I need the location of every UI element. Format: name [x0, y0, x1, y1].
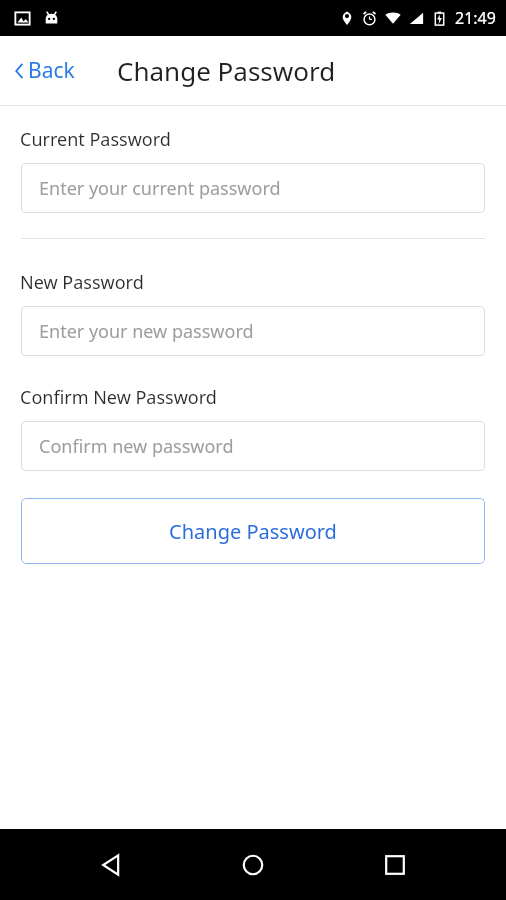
staticText: Enter your current password [39, 176, 281, 201]
staticText: Confirm New Password [20, 385, 217, 410]
button[interactable]: Recent apps [365, 835, 425, 895]
staticText: Change Password [117, 53, 336, 88]
staticText: Change Password [169, 518, 337, 545]
button[interactable]: Back [12, 50, 78, 91]
button[interactable]: Confirm new password [21, 421, 485, 471]
button[interactable]: Change Password [21, 498, 485, 564]
staticText: Back [28, 56, 75, 85]
staticText: Confirm new password [39, 434, 234, 459]
staticText: Current Password [20, 127, 171, 152]
staticText: New Password [20, 270, 144, 295]
staticText: 21:49 [455, 7, 496, 29]
button[interactable]: Back [82, 835, 142, 895]
button[interactable]: Enter your current password [21, 163, 485, 213]
button[interactable]: Home [223, 835, 283, 895]
button[interactable]: Enter your new password [21, 306, 485, 356]
staticText: Enter your new password [39, 319, 254, 344]
